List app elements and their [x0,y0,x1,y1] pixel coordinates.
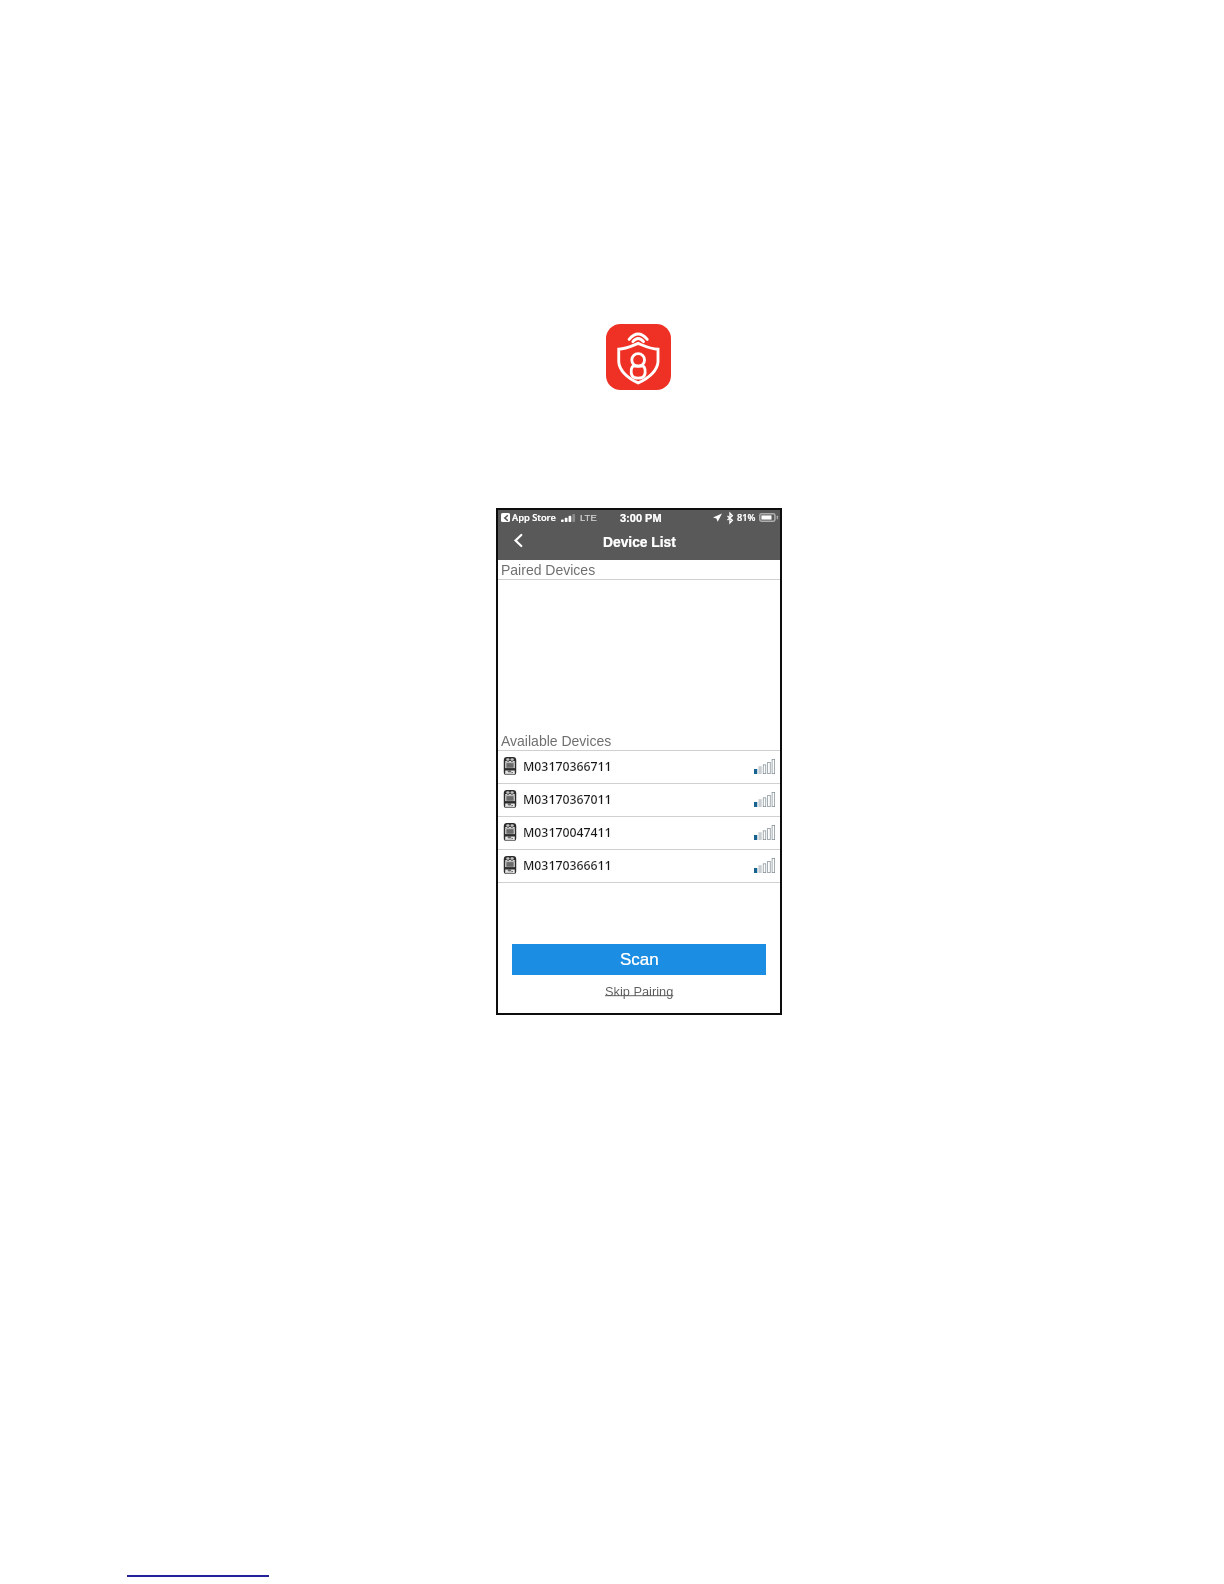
staticText: 3:00 PM [620,512,662,524]
staticText: Paired Devices [501,562,596,578]
staticText: LTE [580,512,597,523]
staticText: M03170367011 [523,791,612,808]
button[interactable]: Back [508,530,528,550]
button[interactable]: M03170366611 [497,850,781,883]
staticText: App Store [512,511,556,524]
staticText: Skip Pairing [605,984,674,998]
staticText: M03170047411 [523,824,612,841]
staticText: M03170366611 [523,857,612,874]
staticText: Device List [603,535,676,550]
staticText: 81% [737,511,756,524]
staticText: Scan [620,950,659,969]
button[interactable]: App icon [606,324,671,390]
button[interactable]: Skip Pairing [601,983,678,999]
staticText: M03170366711 [523,758,612,775]
staticText: Available Devices [501,733,612,749]
button[interactable]: M03170366711 [497,751,781,784]
button[interactable]: M03170047411 [497,817,781,850]
button[interactable]: M03170367011 [497,784,781,817]
button[interactable]: Scan [512,944,766,975]
